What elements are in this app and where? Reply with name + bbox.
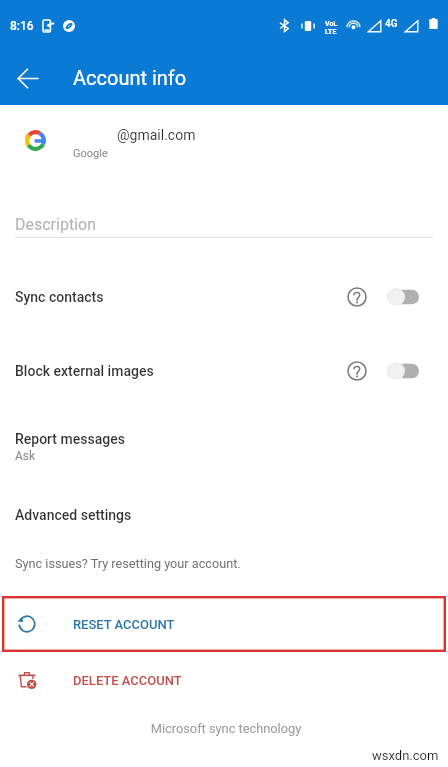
staticText: Sync contacts <box>15 289 104 305</box>
button[interactable]: @gmail.com <box>0 118 448 170</box>
button[interactable]: Back <box>10 61 44 95</box>
button[interactable]: Sync contacts <box>0 280 448 314</box>
staticText: Block external images <box>15 363 154 379</box>
button[interactable]: Help <box>342 356 372 386</box>
button[interactable]: RESET ACCOUNT <box>2 596 446 652</box>
button[interactable]: Advanced settings <box>0 502 448 530</box>
staticText: @gmail.com <box>117 127 196 143</box>
staticText: 8:16 <box>10 19 34 33</box>
staticText: Microsoft sync technology <box>2 721 448 736</box>
button[interactable]: Toggle Block external images <box>387 358 420 384</box>
staticText: wsxdn.com <box>372 748 439 763</box>
button[interactable]: Help <box>342 282 372 312</box>
staticText: DELETE ACCOUNT <box>73 673 182 688</box>
staticText: RESET ACCOUNT <box>73 617 175 632</box>
staticText: Advanced settings <box>15 507 132 523</box>
staticText: VoL <box>325 20 338 28</box>
button[interactable]: Report messages <box>0 428 448 470</box>
button[interactable]: Block external images <box>0 354 448 388</box>
staticText: Sync issues? Try resetting your account. <box>15 556 241 571</box>
button[interactable]: Toggle Sync contacts <box>387 284 420 310</box>
staticText: Report messages <box>15 431 125 447</box>
staticText: LTE <box>325 28 337 36</box>
staticText: Ask <box>15 449 36 463</box>
staticText: Account info <box>73 66 187 89</box>
staticText: Description <box>15 215 96 234</box>
button[interactable]: DELETE ACCOUNT <box>0 656 448 704</box>
staticText: Google <box>73 147 108 160</box>
staticText: 4G <box>385 18 398 30</box>
